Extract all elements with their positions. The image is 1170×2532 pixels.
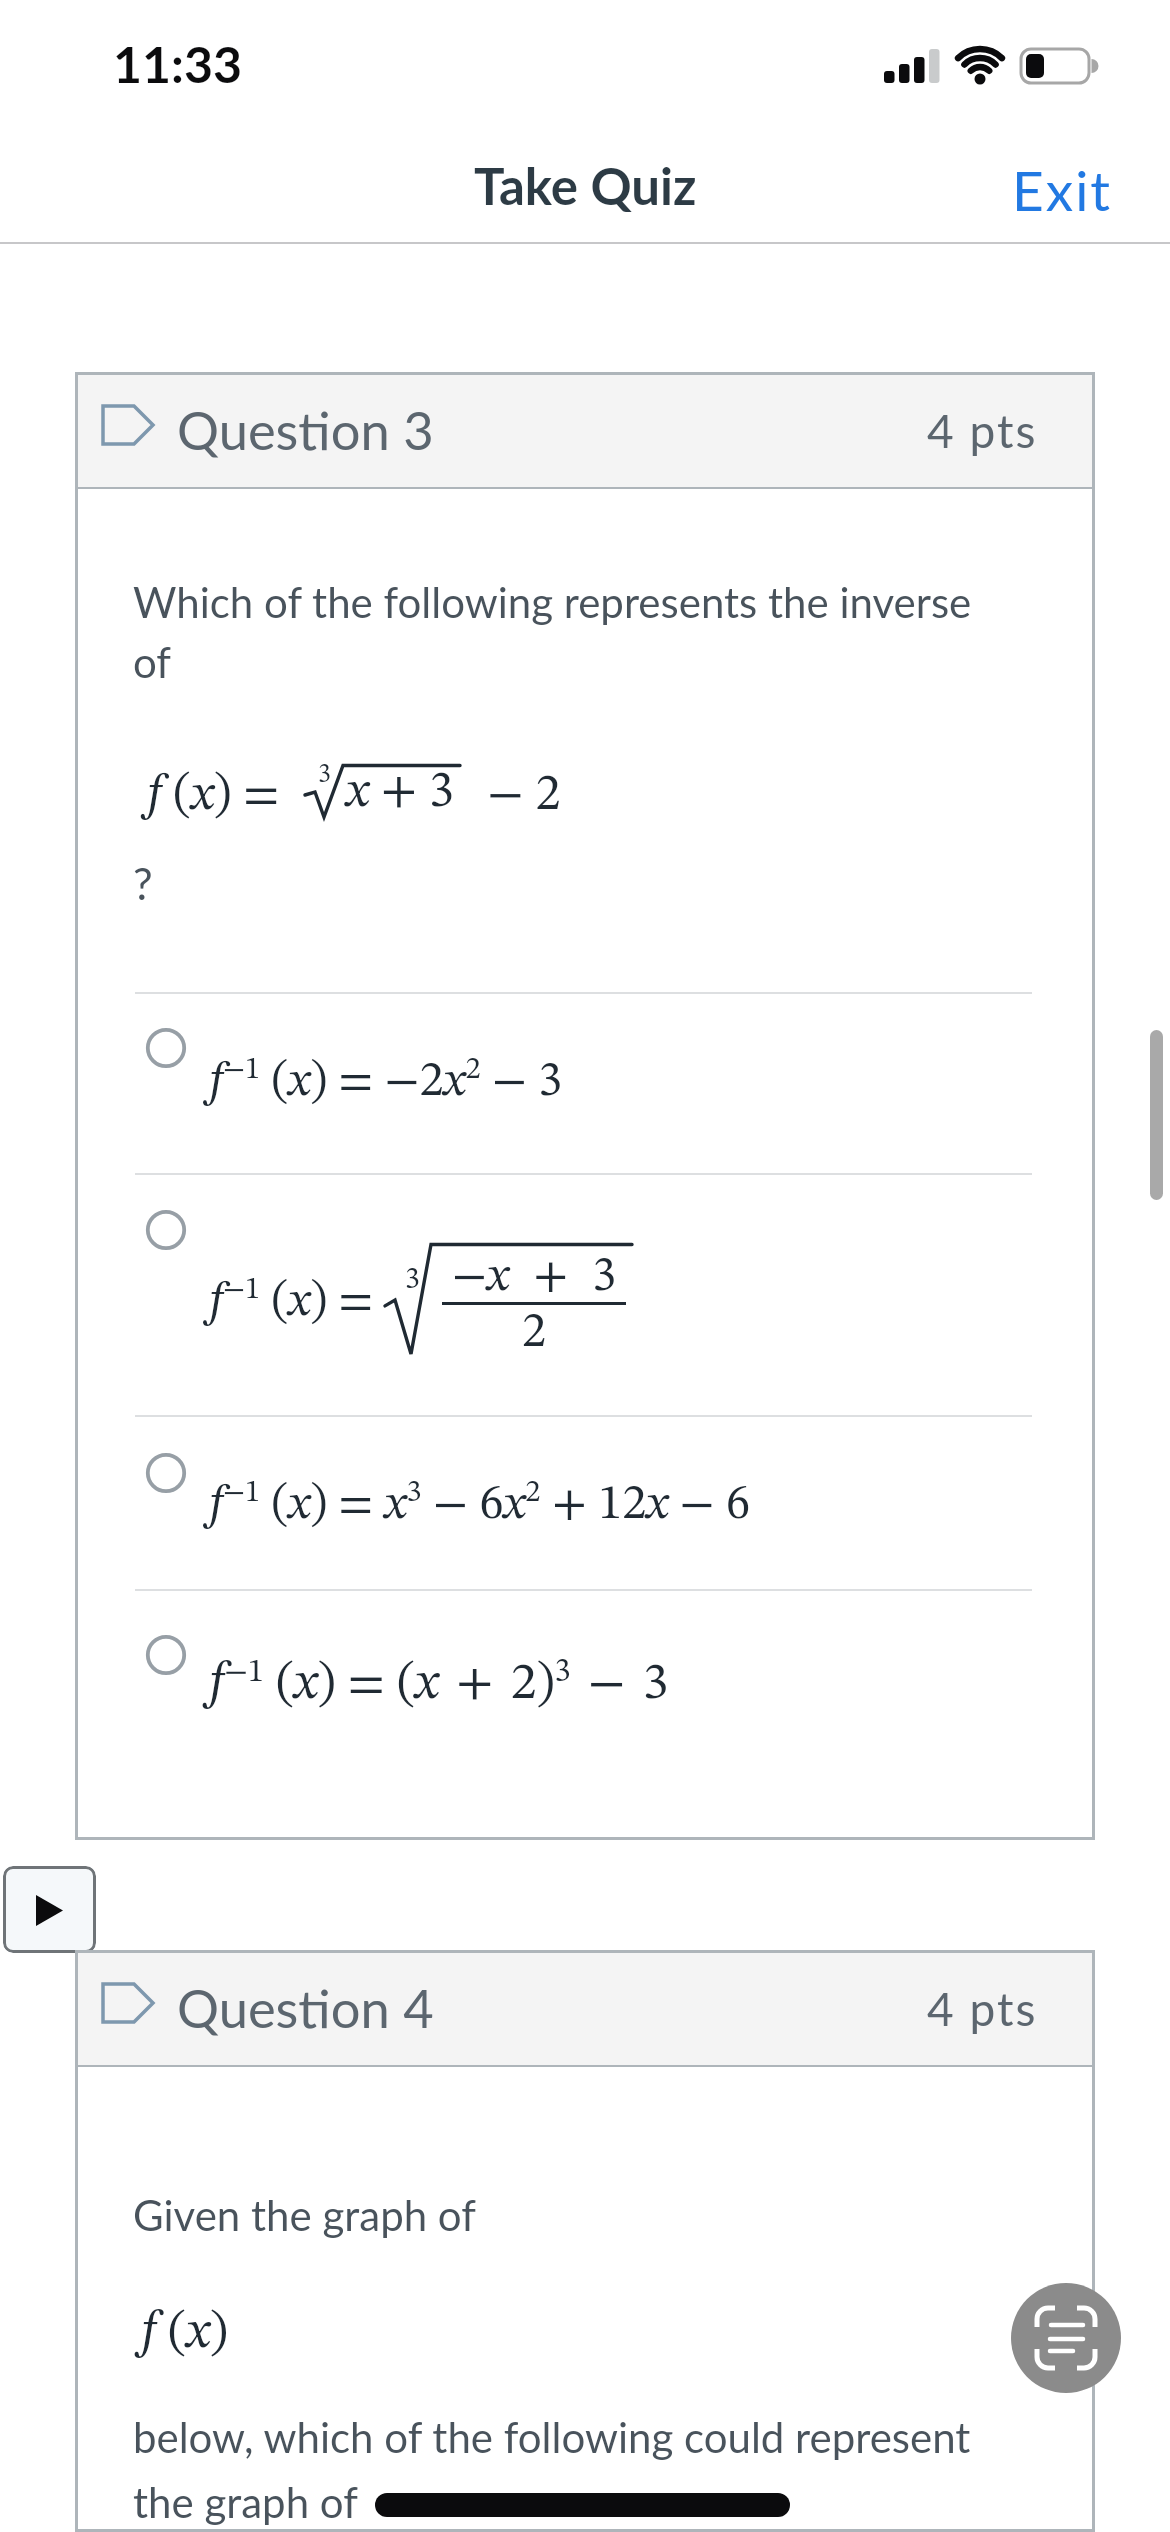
staticText: f−1 (x) =	[209, 1275, 385, 1326]
staticText: 3	[405, 1265, 420, 1295]
button[interactable]: f−1 (x) =	[75, 1175, 1095, 1415]
staticText: f−1 (x) = x3 − 6x2 + 12x − 6	[209, 1478, 750, 1529]
staticText: 2	[522, 1309, 547, 1358]
staticText: f (x)	[141, 2307, 228, 2359]
staticText: Question 4	[177, 1976, 434, 2039]
staticText: 4 pts	[927, 1981, 1038, 2036]
button[interactable]: Exit	[1012, 157, 1113, 223]
staticText: f−1 (x) = (x + 2)3 − 3	[209, 1656, 669, 1711]
button[interactable]: f−1 (x) = (x + 2)3 − 3	[75, 1591, 1095, 1771]
staticText: f (x) =	[147, 771, 305, 822]
staticText: 11:33	[113, 34, 242, 94]
button[interactable]: f−1 (x) = −2x2 − 3	[75, 994, 1095, 1173]
staticText: f−1 (x) = −2x2 − 3	[209, 1055, 563, 1106]
staticText: x + 3	[346, 768, 454, 819]
staticText: Given the graph of	[133, 2190, 476, 2240]
staticText: below, which of the following could repr…	[133, 2412, 971, 2527]
button[interactable]	[3, 1866, 96, 1953]
staticText: ?	[133, 857, 153, 910]
button[interactable]: f−1 (x) = x3 − 6x2 + 12x − 6	[75, 1417, 1095, 1591]
staticText: − 2	[462, 771, 561, 822]
button[interactable]	[1011, 2283, 1121, 2393]
staticText: −x + 3	[452, 1253, 617, 1302]
staticText: Question 3	[177, 398, 434, 461]
staticText: Exit	[1012, 157, 1113, 223]
staticText: 4 pts	[927, 403, 1038, 458]
staticText: 3	[318, 762, 331, 788]
staticText: Which of the following represents the in…	[133, 577, 972, 686]
staticText: Take Quiz	[474, 155, 697, 216]
